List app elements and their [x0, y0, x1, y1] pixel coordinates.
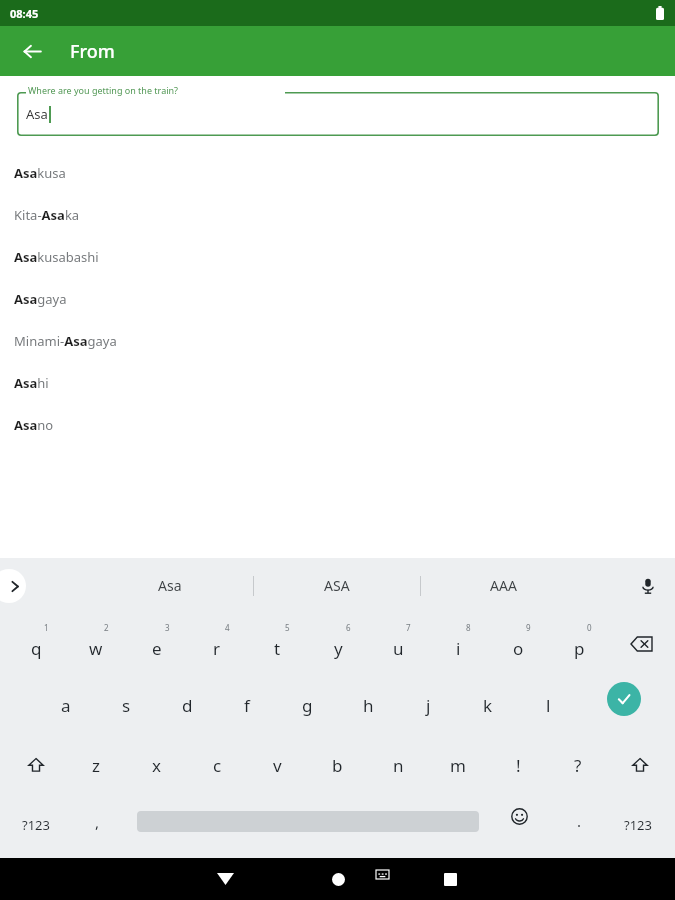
button[interactable]: z	[68, 735, 124, 795]
button[interactable]: Minami-Asagaya	[0, 320, 675, 362]
button[interactable]: ?	[550, 735, 606, 795]
staticText: ?	[574, 754, 582, 777]
button[interactable]: m	[430, 735, 486, 795]
staticText: 0	[587, 622, 592, 633]
button[interactable]: Kita-Asaka	[0, 194, 675, 236]
staticText: v	[273, 754, 282, 777]
button[interactable]: p	[551, 613, 607, 675]
button[interactable]: q	[8, 613, 64, 675]
button[interactable]: !	[490, 735, 546, 795]
button[interactable]: Emoji	[498, 795, 540, 837]
staticText: 6	[346, 622, 351, 633]
staticText: Asano	[14, 416, 54, 434]
button[interactable]: i	[430, 613, 486, 675]
staticText: 3	[165, 622, 170, 633]
button[interactable]: k	[460, 675, 516, 735]
button[interactable]: h	[340, 675, 396, 735]
staticText: k	[483, 694, 493, 717]
button[interactable]: s	[98, 675, 154, 735]
button[interactable]: Asakusabashi	[0, 236, 675, 278]
staticText: 5	[285, 622, 290, 633]
button[interactable]: Recent apps	[428, 858, 472, 900]
staticText: l	[546, 694, 551, 717]
staticText: d	[182, 694, 193, 717]
staticText: Asagaya	[14, 290, 67, 308]
staticText: z	[92, 754, 100, 777]
button[interactable]: AAA	[443, 558, 563, 613]
button[interactable]: Back	[203, 858, 247, 900]
staticText: c	[213, 754, 222, 777]
staticText: y	[334, 637, 343, 660]
staticText: ,	[95, 812, 100, 832]
staticText: 9	[526, 622, 531, 633]
staticText: x	[152, 754, 161, 777]
staticText: w	[89, 637, 103, 660]
button[interactable]: t	[249, 613, 305, 675]
button[interactable]: v	[249, 735, 305, 795]
button[interactable]: o	[490, 613, 546, 675]
button[interactable]: Asagaya	[0, 278, 675, 320]
button[interactable]: Expand toolbar	[0, 569, 26, 603]
staticText: 7	[406, 622, 411, 633]
button[interactable]: ?123	[10, 795, 62, 855]
staticText: Asakusa	[14, 164, 66, 182]
staticText: e	[152, 637, 162, 660]
button[interactable]: w	[68, 613, 124, 675]
button[interactable]: e	[129, 613, 185, 675]
staticText: g	[302, 694, 313, 717]
button[interactable]: Asakusa	[0, 152, 675, 194]
button[interactable]: u	[370, 613, 426, 675]
button[interactable]: g	[279, 675, 335, 735]
staticText: a	[61, 694, 71, 717]
button[interactable]: b	[309, 735, 365, 795]
staticText: ?123	[22, 816, 50, 834]
staticText: !	[516, 754, 521, 777]
staticText: i	[456, 637, 461, 660]
button[interactable]: ?123	[612, 795, 664, 855]
staticText: 2	[104, 622, 109, 633]
button[interactable]: j	[400, 675, 456, 735]
staticText: f	[244, 694, 250, 717]
button[interactable]: Shift	[14, 735, 58, 795]
button[interactable]: x	[128, 735, 184, 795]
button[interactable]: f	[219, 675, 275, 735]
button[interactable]: Asa	[17, 92, 659, 136]
staticText: m	[450, 754, 466, 777]
button[interactable]: c	[189, 735, 245, 795]
button[interactable]: y	[310, 613, 366, 675]
button[interactable]: r	[189, 613, 245, 675]
staticText: 8	[466, 622, 471, 633]
staticText: o	[513, 637, 524, 660]
staticText: ·	[577, 815, 582, 835]
staticText: q	[31, 637, 42, 660]
button[interactable]: l	[520, 675, 576, 735]
button[interactable]: n	[370, 735, 426, 795]
staticText: t	[274, 637, 281, 660]
button[interactable]: Back	[16, 35, 48, 67]
button[interactable]: ·	[558, 795, 600, 855]
button[interactable]: a	[38, 675, 94, 735]
button[interactable]: Enter	[600, 675, 648, 723]
button[interactable]: ,	[76, 795, 118, 855]
button[interactable]: Asa	[110, 558, 230, 613]
button[interactable]: ASA	[277, 558, 397, 613]
button[interactable]: Asano	[0, 404, 675, 446]
button[interactable]: Voice input	[632, 570, 664, 602]
staticText: h	[363, 694, 374, 717]
staticText: ?123	[624, 816, 652, 834]
button[interactable]: Shift	[618, 735, 662, 795]
button[interactable]: d	[159, 675, 215, 735]
button[interactable]: Asahi	[0, 362, 675, 404]
button[interactable]: Backspace	[619, 622, 663, 666]
staticText: p	[574, 637, 585, 660]
button[interactable]: Home	[316, 858, 360, 900]
staticText: b	[332, 754, 343, 777]
button[interactable]: Switch keyboard	[366, 858, 398, 890]
staticText: Minami-Asagaya	[14, 332, 117, 350]
staticText: 08:45	[10, 6, 39, 21]
staticText: ASA	[324, 576, 350, 595]
staticText: j	[426, 694, 431, 717]
staticText: 1	[44, 622, 49, 633]
staticText: Kita-Asaka	[14, 206, 80, 224]
